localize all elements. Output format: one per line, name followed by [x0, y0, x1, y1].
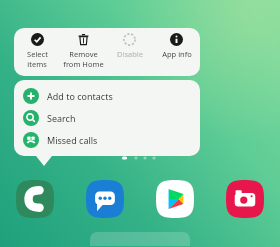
button[interactable]: Phone	[16, 180, 54, 218]
other: Select items	[31, 33, 44, 46]
button[interactable]: Messages	[86, 180, 124, 218]
staticText: Missed calls	[47, 134, 98, 146]
button[interactable]: Play Store	[156, 180, 194, 218]
button[interactable]: Search	[14, 107, 200, 129]
staticText: Search	[47, 112, 76, 124]
button[interactable]	[90, 232, 190, 246]
other: Disable	[123, 33, 136, 46]
staticText: items	[27, 59, 47, 69]
other: App info	[170, 33, 183, 46]
other: Remove from Home	[77, 33, 90, 46]
button[interactable]: Missed calls	[14, 129, 200, 151]
button[interactable]: Remove from Home	[60, 28, 106, 69]
staticText: from Home	[63, 59, 104, 69]
staticText: Add to contacts	[47, 90, 113, 102]
button[interactable]: Camera	[226, 180, 264, 218]
button[interactable]: Select items	[14, 28, 60, 69]
staticText: App info	[162, 49, 192, 59]
button[interactable]: App info	[153, 28, 200, 59]
button[interactable]: Disable	[106, 28, 153, 59]
staticText: Disable	[117, 49, 143, 59]
staticText: Remove	[69, 49, 98, 59]
button[interactable]: Add to contacts	[14, 85, 200, 107]
staticText: Select	[27, 49, 48, 59]
